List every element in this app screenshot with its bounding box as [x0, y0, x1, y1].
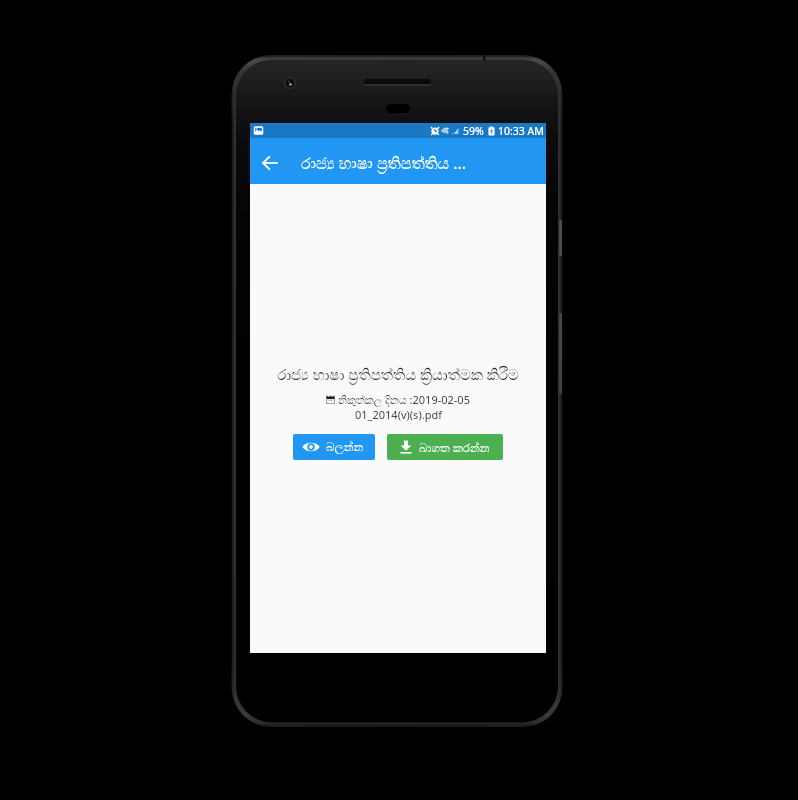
staticText: රාජ්‍ය භාෂා ප්‍රතිපත්තිය ... — [301, 152, 467, 174]
staticText: 59% — [463, 124, 484, 138]
staticText: 10:33 AM — [498, 124, 544, 138]
staticText: නිකුත්කල දිනය :2019-02-05 — [338, 392, 470, 407]
staticText: බලන්න — [326, 441, 364, 453]
button[interactable]: බාගත කරන්න — [387, 434, 503, 460]
staticText: රාජ්‍ය භාෂා ප්‍රතිපත්තිය ක්‍රියාත්මක කිර… — [277, 364, 519, 384]
button[interactable]: බලන්න — [293, 434, 375, 460]
button[interactable]: Back — [250, 138, 290, 184]
staticText: 01_2014(v)(s).pdf — [355, 407, 442, 422]
staticText: බාගත කරන්න — [419, 439, 490, 455]
